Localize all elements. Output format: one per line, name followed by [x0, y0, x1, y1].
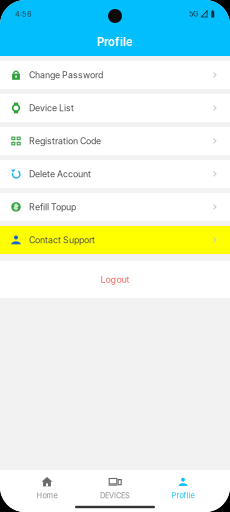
staticText: 5G	[189, 10, 198, 18]
staticText: Logout	[100, 274, 129, 285]
button[interactable]: Contact Support	[0, 226, 230, 254]
staticText: Change Password	[29, 70, 103, 80]
button[interactable]: Change Password	[0, 61, 230, 89]
button[interactable]: Logout	[0, 261, 230, 298]
staticText: Refill Topup	[29, 202, 76, 212]
button[interactable]: Registration Code	[0, 127, 230, 155]
staticText: 4:56	[15, 9, 32, 18]
staticText: Home	[36, 491, 57, 500]
button[interactable]: Delete Account	[0, 160, 230, 188]
staticText: Contact Support	[29, 235, 95, 245]
staticText: Registration Code	[29, 136, 101, 146]
staticText: DEVICES	[100, 491, 130, 500]
button[interactable]: DEVICES	[81, 470, 149, 504]
button[interactable]: Profile	[149, 470, 217, 504]
button[interactable]: Device List	[0, 94, 230, 122]
staticText: Delete Account	[29, 169, 91, 179]
button[interactable]: Home	[13, 470, 81, 504]
staticText: Device List	[29, 103, 74, 113]
button[interactable]: Refill Topup	[0, 193, 230, 221]
staticText: Profile	[171, 491, 194, 500]
staticText: Profile	[97, 35, 133, 49]
